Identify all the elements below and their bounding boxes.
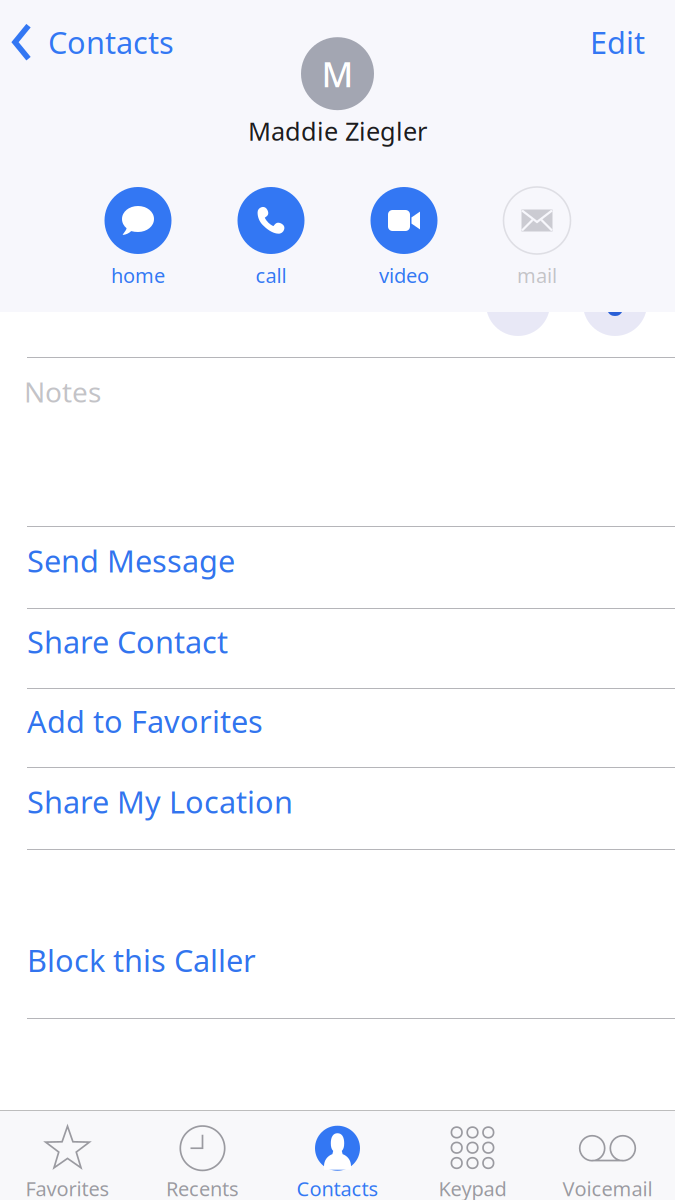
- staticText: mail: [517, 262, 557, 289]
- staticText: Favorites: [25, 1175, 109, 1200]
- button[interactable]: Block this Caller: [0, 928, 675, 1006]
- button[interactable]: Send Message: [0, 527, 675, 608]
- staticText: video: [379, 262, 429, 289]
- staticText: Recents: [166, 1175, 239, 1200]
- button[interactable]: home: [71, 187, 204, 289]
- staticText: home: [111, 262, 165, 289]
- staticText: call: [255, 262, 286, 289]
- button[interactable]: Keypad: [405, 1111, 540, 1200]
- staticText: Add to Favorites: [27, 701, 263, 741]
- button[interactable]: Contacts: [0, 14, 174, 70]
- button[interactable]: Contacts: [270, 1111, 405, 1200]
- button[interactable]: Add to Favorites: [0, 689, 675, 767]
- button[interactable]: mail: [470, 187, 603, 289]
- button[interactable]: Favorites: [0, 1111, 135, 1200]
- staticText: Voicemail: [562, 1175, 652, 1200]
- button[interactable]: Edit: [590, 14, 675, 70]
- button[interactable]: Recents: [135, 1111, 270, 1200]
- staticText: Share Contact: [27, 621, 228, 662]
- staticText: Keypad: [438, 1175, 506, 1200]
- button[interactable]: call: [204, 187, 337, 289]
- button[interactable]: Voicemail: [540, 1111, 675, 1200]
- button[interactable]: Share My Location: [0, 768, 675, 849]
- staticText: Maddie Ziegler: [248, 114, 427, 148]
- staticText: Notes: [24, 373, 101, 410]
- staticText: Block this Caller: [27, 940, 256, 980]
- staticText: Send Message: [27, 540, 235, 581]
- staticText: Contacts: [48, 22, 174, 62]
- staticText: Edit: [590, 22, 645, 62]
- button[interactable]: video: [337, 187, 470, 289]
- staticText: M: [321, 51, 353, 97]
- staticText: Contacts: [296, 1175, 378, 1200]
- staticText: Share My Location: [27, 781, 293, 822]
- button[interactable]: Share Contact: [0, 609, 675, 688]
